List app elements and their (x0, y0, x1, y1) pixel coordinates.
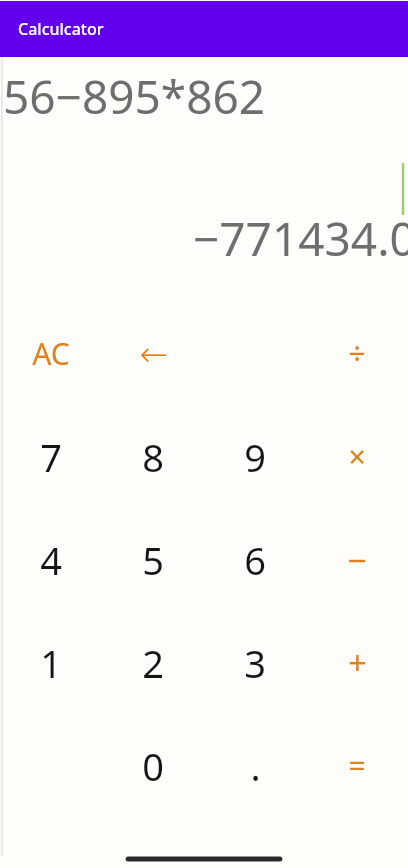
staticText: 56−895*862 (3, 65, 266, 128)
button[interactable]: 4 (0, 508, 102, 611)
button[interactable]: Divide (306, 302, 408, 405)
button[interactable]: 6 (204, 508, 306, 611)
staticText: 2 (142, 637, 164, 689)
button[interactable]: 2 (102, 611, 204, 714)
button[interactable]: AC (0, 302, 102, 405)
button[interactable]: Backspace (102, 302, 204, 405)
staticText: 6 (244, 534, 266, 586)
staticText: 0 (142, 740, 164, 792)
button[interactable]: Plus (306, 611, 408, 714)
staticText: 1 (40, 637, 62, 689)
staticText: ← (139, 334, 168, 374)
button[interactable]: Minus (306, 508, 408, 611)
staticText: + (348, 641, 367, 685)
button[interactable]: 7 (0, 405, 102, 508)
button[interactable]: 3 (204, 611, 306, 714)
staticText: 8 (142, 431, 164, 483)
staticText: 4 (40, 534, 62, 586)
staticText: 5 (142, 534, 164, 586)
staticText: − (347, 537, 367, 583)
staticText: ÷ (348, 333, 366, 374)
button[interactable]: 9 (204, 405, 306, 508)
staticText: Calculcator (18, 18, 104, 40)
staticText: 9 (244, 431, 266, 483)
button[interactable]: Equals (306, 714, 408, 817)
staticText: . (250, 740, 261, 792)
button[interactable]: 5 (102, 508, 204, 611)
button[interactable]: Decimal point (204, 714, 306, 817)
staticText: × (348, 436, 366, 477)
staticText: = (348, 745, 366, 786)
staticText: 3 (244, 637, 266, 689)
staticText: AC (32, 333, 70, 374)
button[interactable]: 1 (0, 611, 102, 714)
button[interactable]: Multiply (306, 405, 408, 508)
staticText: 7 (40, 431, 62, 483)
button[interactable]: 8 (102, 405, 204, 508)
staticText: −771434.0 (193, 207, 408, 270)
button[interactable]: 0 (102, 714, 204, 817)
